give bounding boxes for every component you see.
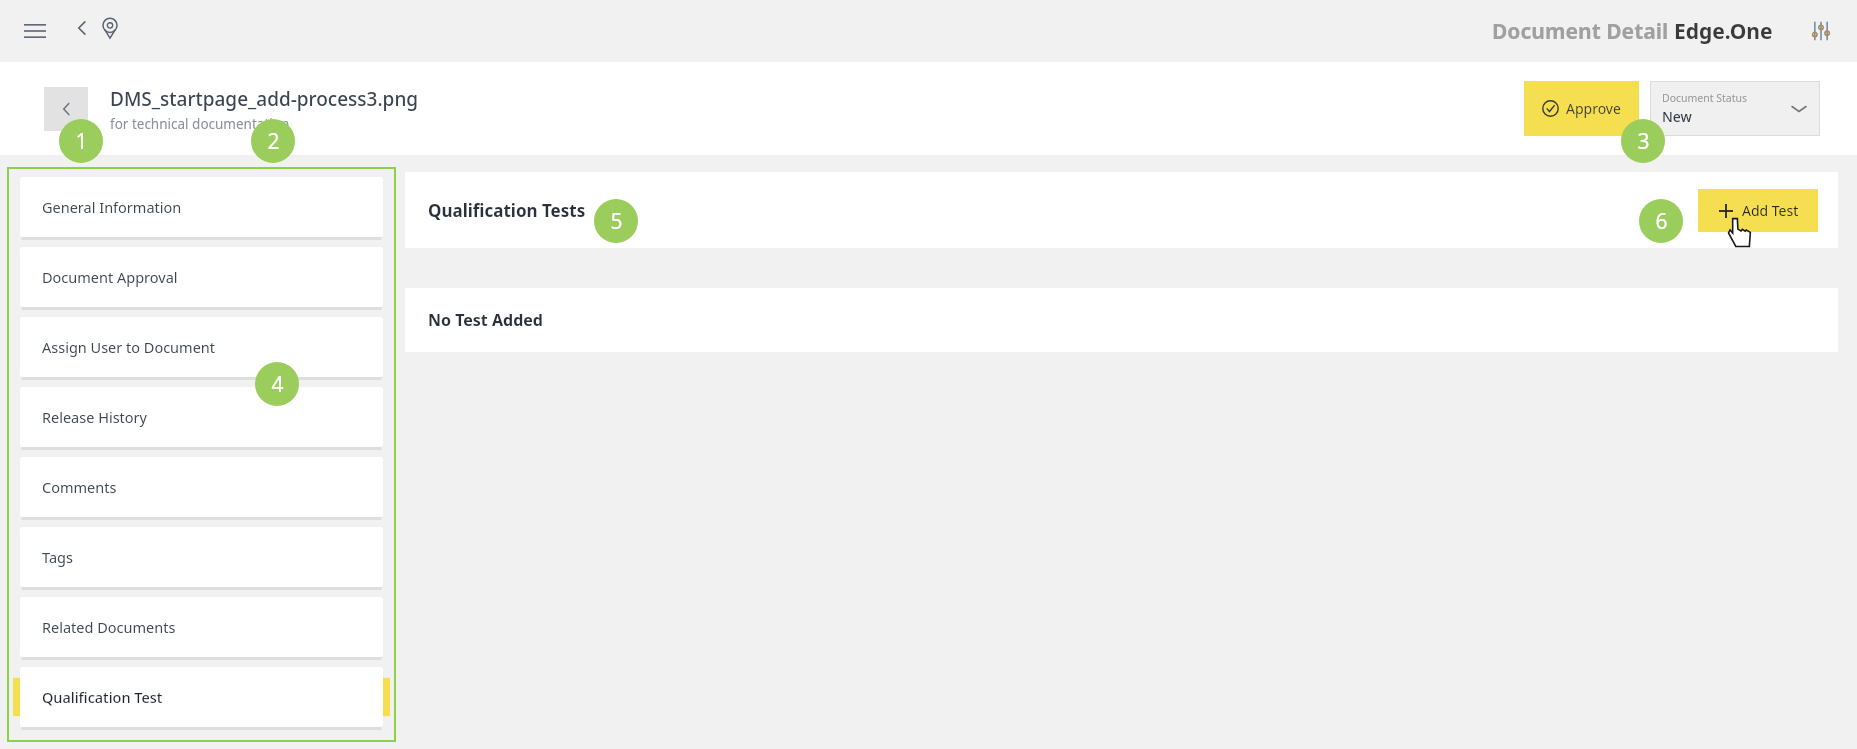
staticText: Qualification Test (42, 687, 163, 707)
staticText: New (1662, 107, 1692, 126)
button[interactable]: Assign User to Document (20, 317, 383, 377)
staticText: 1 (75, 127, 88, 156)
staticText: Edge.One (1674, 17, 1773, 46)
button[interactable]: Add Test (1698, 189, 1818, 232)
staticText: Qualification Tests (428, 199, 586, 222)
staticText: Release History (42, 407, 147, 427)
button[interactable]: Back (44, 87, 88, 131)
staticText: Tags (42, 547, 73, 567)
staticText: Document Detail (1492, 17, 1674, 46)
staticText: 6 (1655, 207, 1668, 236)
button[interactable]: Document Approval (20, 247, 383, 307)
staticText: Document Approval (42, 267, 178, 287)
staticText: No Test Added (428, 309, 543, 331)
button[interactable]: Release History (20, 387, 383, 447)
button[interactable]: Menu (12, 8, 58, 54)
button[interactable]: Qualification Test (20, 667, 383, 727)
staticText: 3 (1637, 127, 1650, 156)
staticText: 4 (271, 370, 284, 399)
staticText: Add Test (1742, 201, 1799, 220)
button[interactable]: Back (62, 8, 102, 48)
staticText: Approve (1566, 99, 1621, 118)
button[interactable]: Location (88, 6, 132, 50)
staticText: 5 (610, 207, 623, 236)
button[interactable]: Document Status (1650, 81, 1820, 136)
button[interactable]: Related Documents (20, 597, 383, 657)
button[interactable]: Tags (20, 527, 383, 587)
staticText: Assign User to Document (42, 337, 216, 357)
button[interactable]: General Information (20, 177, 383, 237)
button[interactable]: Settings (1799, 9, 1843, 53)
staticText: Comments (42, 477, 117, 497)
staticText: for technical documentation (110, 115, 290, 133)
button[interactable]: Approve (1524, 81, 1639, 136)
staticText: DMS_startpage_add-process3.png (110, 86, 419, 112)
button[interactable]: Comments (20, 457, 383, 517)
staticText: Document Status (1662, 91, 1748, 105)
staticText: 2 (267, 127, 280, 156)
staticText: General Information (42, 197, 182, 217)
staticText: Related Documents (42, 617, 176, 637)
